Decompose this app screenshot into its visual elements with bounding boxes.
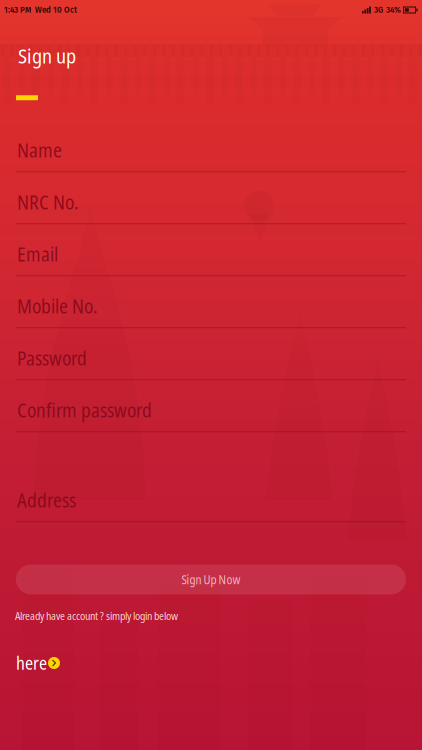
staticText: Wed 10 Oct: [35, 5, 77, 15]
staticText: 1:43 PM: [4, 5, 31, 15]
staticText: Already have account ? simply login belo…: [15, 608, 178, 623]
staticText: 3G: [374, 5, 383, 15]
button[interactable]: Address: [16, 432, 406, 522]
staticText: NRC No.: [17, 189, 79, 215]
staticText: Address: [17, 487, 76, 513]
staticText: 34%: [386, 5, 401, 15]
button[interactable]: Name: [16, 120, 406, 172]
staticText: Mobile No.: [17, 293, 98, 319]
staticText: Confirm password: [17, 397, 152, 423]
staticText: Password: [17, 345, 87, 371]
button[interactable]: Confirm password: [16, 380, 406, 432]
button[interactable]: NRC No.: [16, 172, 406, 224]
button[interactable]: here: [0, 650, 68, 676]
button[interactable]: Email: [16, 224, 406, 276]
staticText: here: [16, 651, 47, 675]
button[interactable]: Mobile No.: [16, 276, 406, 328]
staticText: Name: [17, 137, 62, 163]
staticText: Sign up: [18, 42, 76, 69]
staticText: Sign Up Now: [181, 571, 240, 588]
button[interactable]: Password: [16, 328, 406, 380]
staticText: Email: [17, 241, 58, 267]
button[interactable]: Sign Up Now: [16, 564, 406, 594]
